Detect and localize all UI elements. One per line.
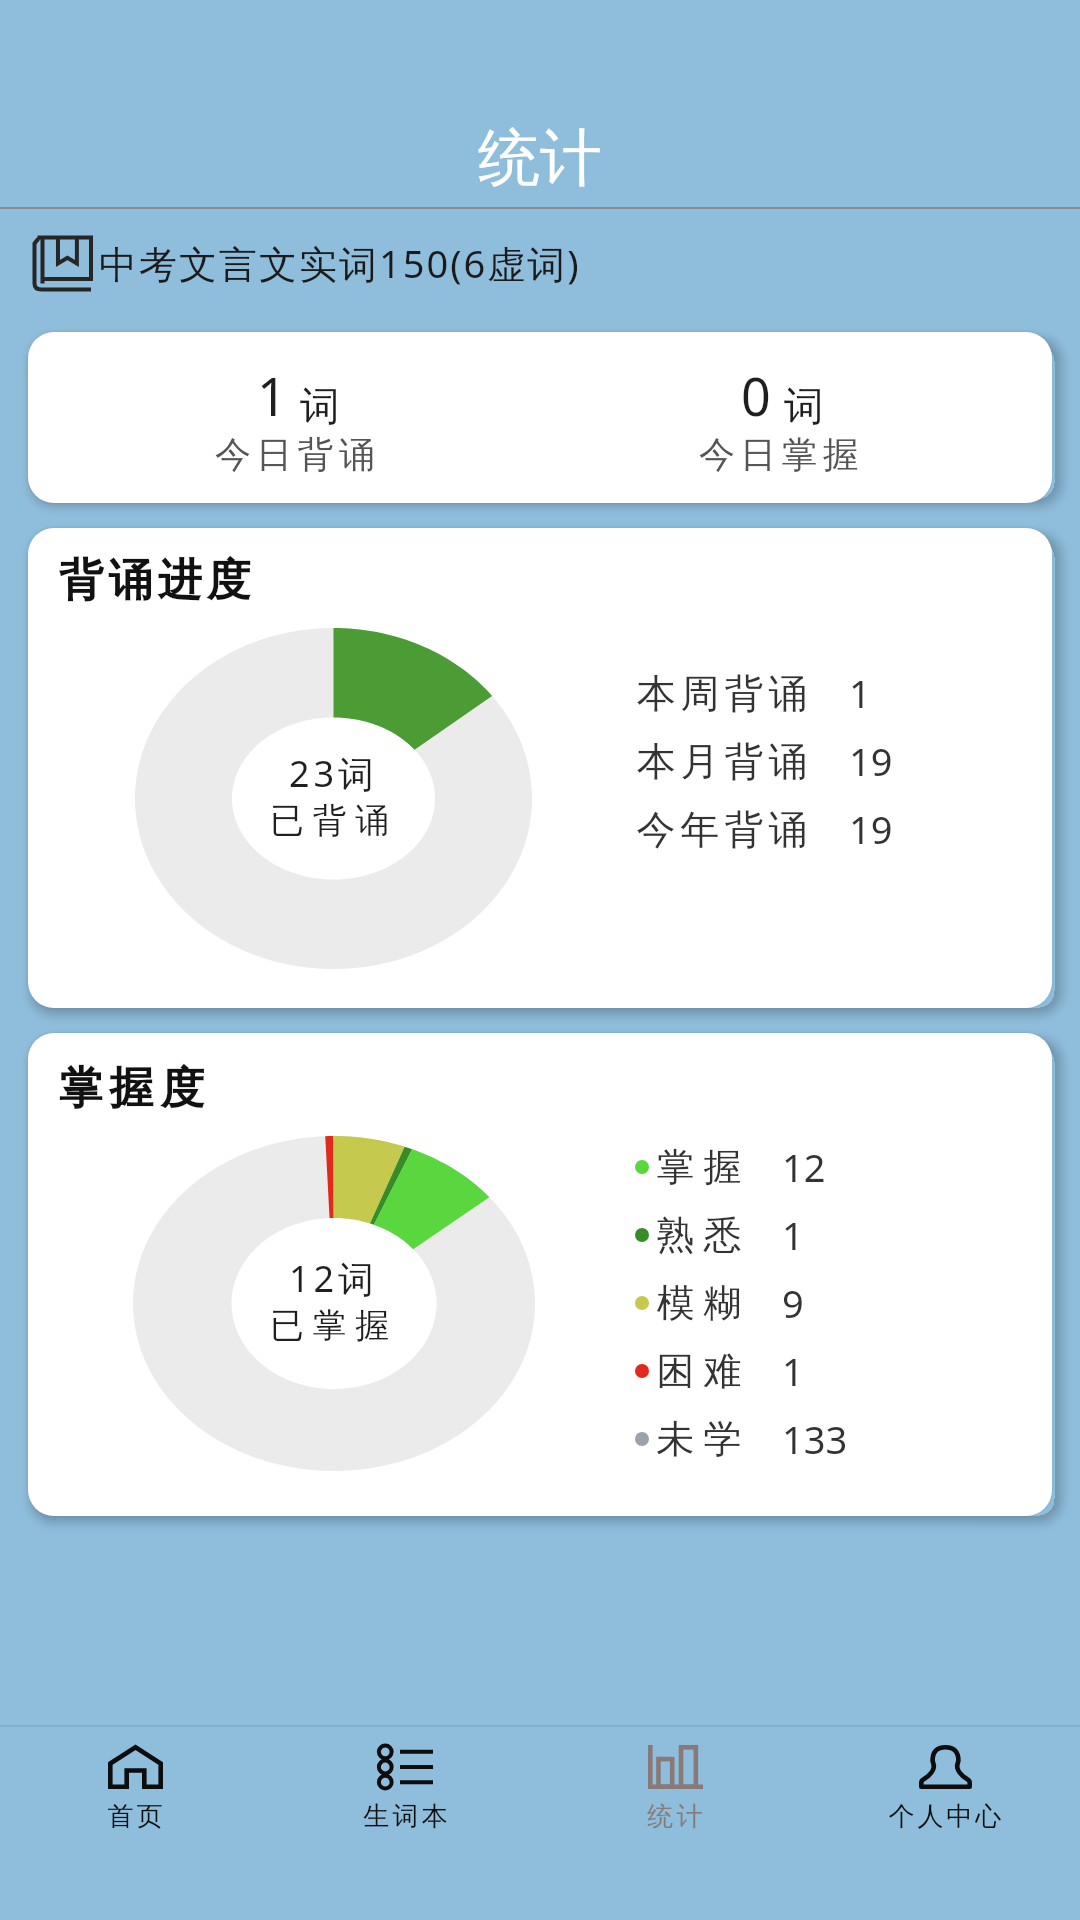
staticText: 掌握 bbox=[652, 1143, 746, 1191]
other: 首页 bbox=[108, 1745, 163, 1789]
button[interactable]: 本周背诵 bbox=[634, 659, 871, 727]
staticText: 词 bbox=[784, 381, 824, 431]
button[interactable]: 本月背诵 bbox=[634, 727, 893, 795]
staticText: 首页 bbox=[106, 1800, 164, 1833]
staticText: 掌握度 bbox=[59, 1061, 211, 1116]
staticText: 模糊 bbox=[652, 1279, 746, 1327]
staticText: 今日掌握 bbox=[699, 432, 865, 477]
button[interactable]: 1 bbox=[28, 332, 540, 503]
staticText: 19 bbox=[849, 803, 893, 855]
button[interactable]: 今年背诵 bbox=[634, 795, 893, 863]
staticText: 生词本 bbox=[362, 1800, 449, 1833]
staticText: 词 bbox=[300, 381, 340, 431]
staticText: 12 bbox=[782, 1141, 826, 1193]
button[interactable]: 未学 bbox=[635, 1405, 848, 1473]
staticText: 熟悉 bbox=[652, 1211, 746, 1259]
staticText: 未学 bbox=[652, 1415, 746, 1463]
button[interactable]: Book bbox=[31, 230, 581, 296]
other: 个人中心 bbox=[918, 1745, 973, 1789]
button[interactable]: 首页 bbox=[0, 1727, 270, 1920]
staticText: 1 bbox=[782, 1345, 804, 1397]
staticText: 12词 bbox=[289, 1254, 379, 1303]
button[interactable]: 掌握 bbox=[635, 1133, 826, 1201]
staticText: 今年背诵 bbox=[634, 805, 810, 854]
other: 生词本 bbox=[378, 1745, 433, 1789]
button[interactable]: 统计 bbox=[0, 0, 1080, 207]
button[interactable]: 统计 bbox=[540, 1727, 810, 1920]
staticText: 已掌握 bbox=[270, 1304, 398, 1347]
staticText: 中考文言文实词150(6虚词) bbox=[99, 237, 581, 289]
staticText: 统计 bbox=[646, 1800, 704, 1833]
button[interactable]: 熟悉 bbox=[635, 1201, 804, 1269]
button[interactable]: 个人中心 bbox=[810, 1727, 1080, 1920]
staticText: 19 bbox=[849, 735, 893, 787]
staticText: 个人中心 bbox=[887, 1800, 1003, 1833]
staticText: 困难 bbox=[652, 1347, 746, 1395]
staticText: 背诵进度 bbox=[59, 553, 256, 608]
button[interactable]: 模糊 bbox=[635, 1269, 804, 1337]
staticText: 今日背诵 bbox=[215, 432, 381, 477]
other: 统计 bbox=[648, 1745, 703, 1789]
button[interactable]: 0 bbox=[540, 332, 1052, 503]
staticText: 133 bbox=[782, 1413, 848, 1465]
staticText: 23词 bbox=[289, 749, 379, 798]
staticText: 1 bbox=[849, 667, 871, 719]
staticText: 9 bbox=[782, 1277, 804, 1329]
other: Book bbox=[31, 235, 93, 292]
staticText: 1 bbox=[782, 1209, 804, 1261]
button[interactable]: 困难 bbox=[635, 1337, 804, 1405]
staticText: 0 bbox=[741, 360, 771, 431]
staticText: 统计 bbox=[478, 119, 602, 197]
staticText: 本月背诵 bbox=[634, 737, 810, 786]
button[interactable]: 生词本 bbox=[270, 1727, 540, 1920]
staticText: 本周背诵 bbox=[634, 669, 810, 718]
staticText: 1 bbox=[257, 360, 287, 431]
staticText: 已背诵 bbox=[270, 799, 398, 842]
